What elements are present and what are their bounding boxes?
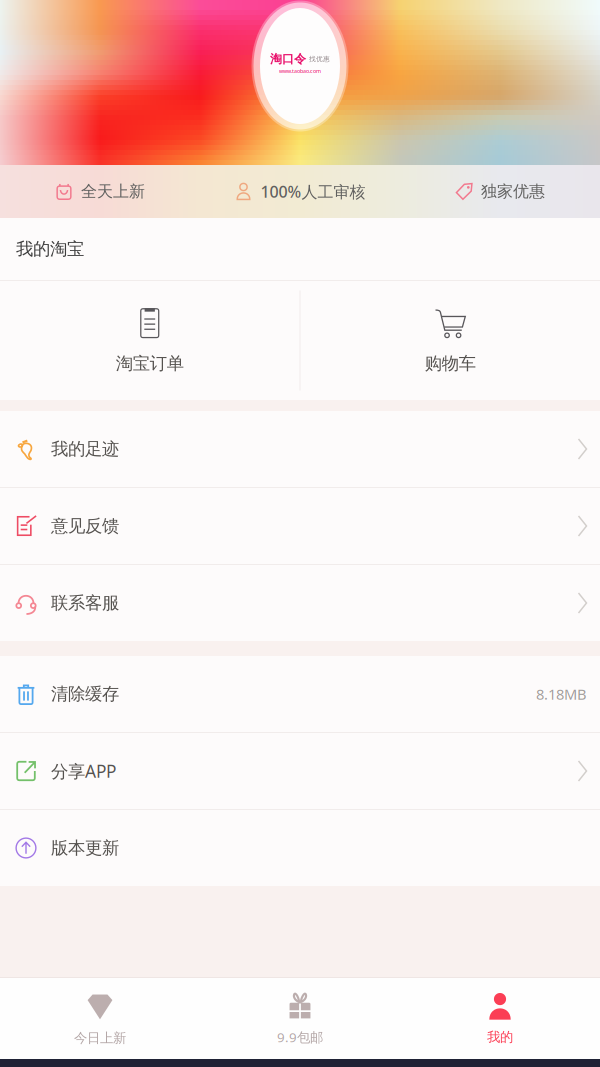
button[interactable]: 版本更新 <box>0 810 600 886</box>
staticText: 分享APP <box>51 759 116 782</box>
button[interactable]: 联系客服 <box>0 565 600 641</box>
staticText: 淘口令 <box>270 52 306 66</box>
staticText: 我的足迹 <box>51 438 119 460</box>
staticText: 全天上新 <box>81 182 145 201</box>
button[interactable]: 我的 <box>400 978 600 1059</box>
button[interactable]: 淘宝订单 <box>0 281 299 400</box>
staticText: 清除缓存 <box>51 683 119 705</box>
staticText: 8.18MB <box>536 684 587 704</box>
button[interactable]: 清除缓存 <box>0 656 600 732</box>
button[interactable]: 分享APP <box>0 733 600 809</box>
button[interactable]: 我的足迹 <box>0 411 600 487</box>
staticText: www.taobao.com <box>279 67 321 74</box>
staticText: 9.9包邮 <box>277 1028 323 1046</box>
staticText: 我的淘宝 <box>16 238 84 260</box>
staticText: 独家优惠 <box>481 182 545 201</box>
staticText: 版本更新 <box>51 837 119 859</box>
staticText: 淘宝订单 <box>116 353 184 374</box>
staticText: 找优惠 <box>309 55 330 63</box>
staticText: 联系客服 <box>51 592 119 614</box>
staticText: 意见反馈 <box>51 515 119 537</box>
staticText: 我的 <box>487 1029 513 1045</box>
button[interactable]: 今日上新 <box>0 978 200 1059</box>
staticText: 今日上新 <box>74 1030 126 1046</box>
button[interactable]: 9.9包邮 <box>200 978 400 1059</box>
button[interactable]: 购物车 <box>300 281 600 400</box>
staticText: 100%人工审核 <box>260 181 365 202</box>
staticText: 购物车 <box>425 353 476 374</box>
button[interactable]: 意见反馈 <box>0 488 600 564</box>
